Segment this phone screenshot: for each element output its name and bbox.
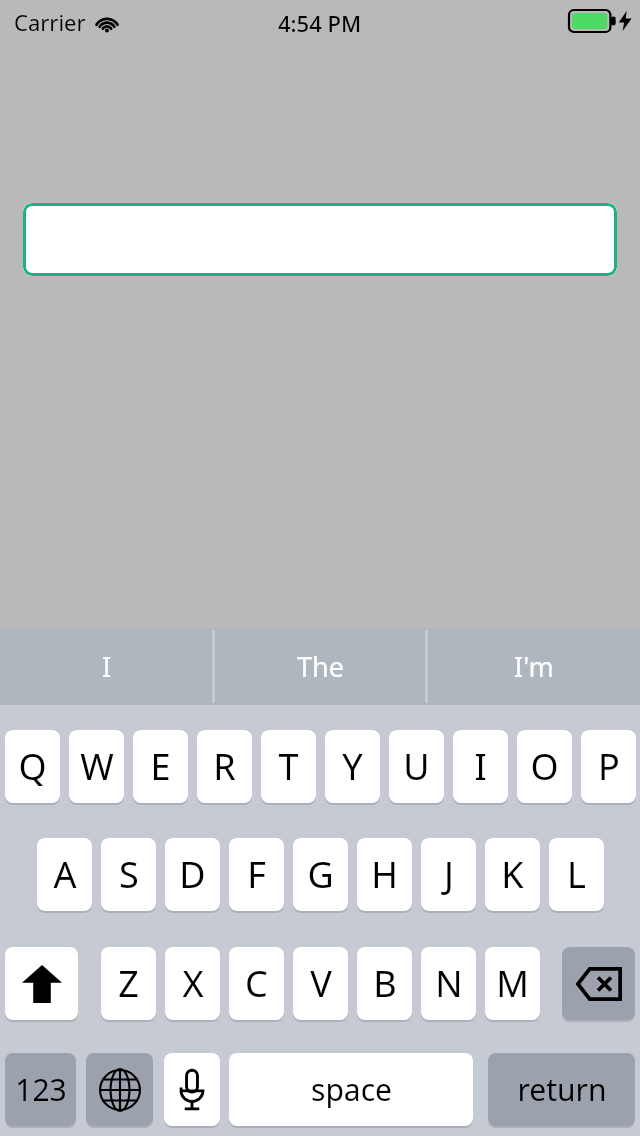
button[interactable]: I'm xyxy=(427,628,640,705)
staticText: The xyxy=(297,648,344,685)
staticText: H xyxy=(371,850,398,899)
staticText: J xyxy=(444,850,454,899)
staticText: K xyxy=(501,850,524,899)
button[interactable]: O xyxy=(517,730,572,803)
staticText: Y xyxy=(342,742,363,791)
button[interactable]: G xyxy=(293,838,348,911)
staticText: F xyxy=(247,850,266,899)
staticText: V xyxy=(310,959,332,1008)
button[interactable]: Voice input xyxy=(164,1053,220,1126)
staticText: 4:54 PM xyxy=(278,8,362,38)
button[interactable]: S xyxy=(101,838,156,911)
staticText: D xyxy=(179,850,206,899)
staticText: W xyxy=(80,742,114,791)
button[interactable]: T xyxy=(261,730,316,803)
staticText: space xyxy=(311,1069,392,1110)
button[interactable]: The xyxy=(214,628,427,705)
button[interactable]: Switch keyboard xyxy=(86,1053,153,1126)
button[interactable]: W xyxy=(69,730,124,803)
staticText: O xyxy=(530,742,559,791)
button[interactable]: L xyxy=(549,838,604,911)
staticText: I xyxy=(474,742,487,791)
button[interactable]: return xyxy=(488,1053,635,1126)
button[interactable]: 123 xyxy=(5,1053,76,1126)
button[interactable]: A xyxy=(37,838,92,911)
button[interactable]: Q xyxy=(5,730,60,803)
button[interactable]: J xyxy=(421,838,476,911)
staticText: return xyxy=(517,1069,607,1110)
button[interactable]: space xyxy=(229,1053,473,1126)
button[interactable]: K xyxy=(485,838,540,911)
staticText: I xyxy=(102,648,112,685)
button[interactable]: B xyxy=(357,947,412,1020)
staticText: I'm xyxy=(514,648,554,685)
button[interactable]: U xyxy=(389,730,444,803)
staticText: M xyxy=(496,959,529,1008)
staticText: B xyxy=(373,959,397,1008)
button[interactable]: H xyxy=(357,838,412,911)
staticText: L xyxy=(567,850,586,899)
button[interactable]: I xyxy=(453,730,508,803)
staticText: 123 xyxy=(15,1069,67,1110)
staticText: T xyxy=(278,742,299,791)
staticText: Z xyxy=(118,959,139,1008)
button[interactable]: C xyxy=(229,947,284,1020)
button[interactable] xyxy=(23,203,617,276)
button[interactable]: Y xyxy=(325,730,380,803)
staticText: R xyxy=(213,742,236,791)
staticText: Q xyxy=(18,742,47,791)
staticText: E xyxy=(150,742,171,791)
button[interactable]: P xyxy=(581,730,636,803)
button[interactable]: V xyxy=(293,947,348,1020)
staticText: S xyxy=(119,850,139,899)
button[interactable]: Z xyxy=(101,947,156,1020)
staticText: N xyxy=(435,959,463,1008)
button[interactable]: M xyxy=(485,947,540,1020)
button[interactable]: I xyxy=(0,628,214,705)
staticText: X xyxy=(182,959,204,1008)
button[interactable]: E xyxy=(133,730,188,803)
staticText: C xyxy=(245,959,268,1008)
button[interactable]: Backspace xyxy=(562,947,635,1020)
button[interactable]: R xyxy=(197,730,252,803)
staticText: A xyxy=(53,850,77,899)
button[interactable]: F xyxy=(229,838,284,911)
button[interactable]: N xyxy=(421,947,476,1020)
staticText: G xyxy=(307,850,334,899)
button[interactable]: D xyxy=(165,838,220,911)
button[interactable]: X xyxy=(165,947,220,1020)
staticText: U xyxy=(403,742,430,791)
staticText: P xyxy=(598,742,620,791)
staticText: Carrier xyxy=(14,7,86,37)
button[interactable]: Shift xyxy=(5,947,78,1020)
